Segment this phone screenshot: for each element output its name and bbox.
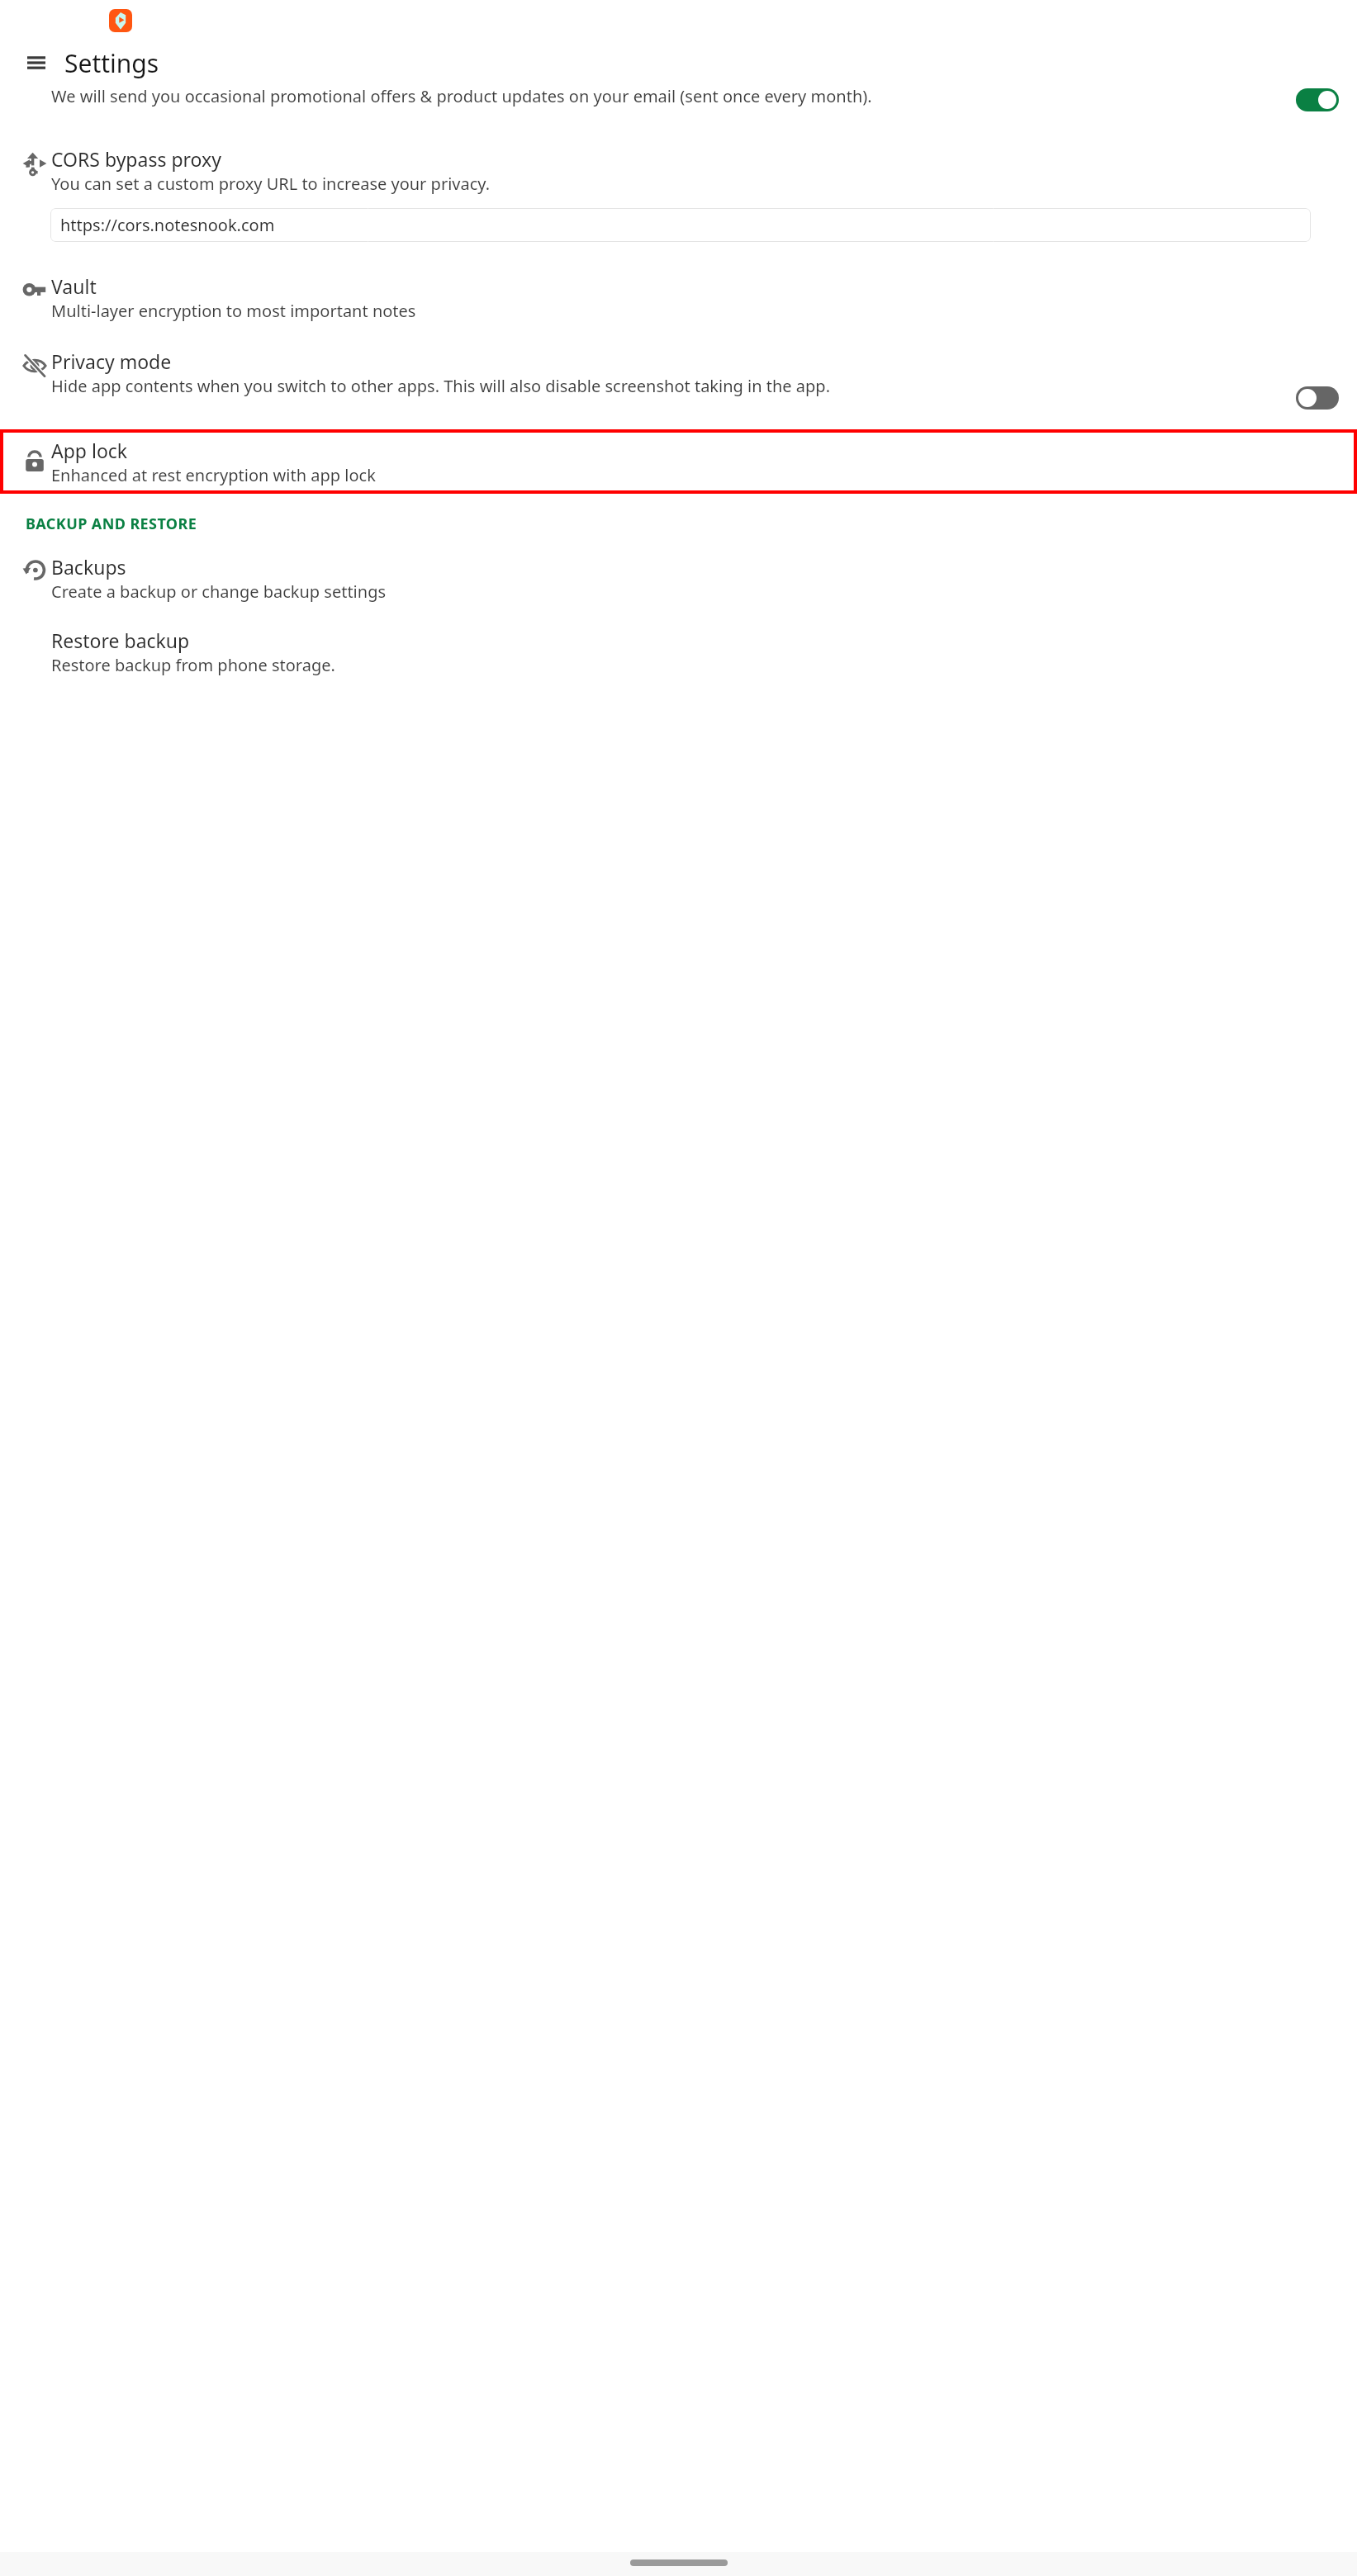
other: App logo: [109, 9, 132, 32]
staticText: You can set a custom proxy URL to increa…: [51, 173, 491, 195]
staticText: Settings: [64, 46, 159, 80]
staticText: Multi-layer encryption to most important…: [51, 300, 416, 322]
staticText: Restore backup: [51, 627, 190, 653]
button[interactable]: Toggle off: [1296, 386, 1339, 410]
button[interactable]: Privacy mode: [0, 348, 1357, 410]
staticText: Backups: [51, 554, 126, 580]
button[interactable]: https://cors.notesnook.com: [50, 208, 1311, 242]
staticText: Hide app contents when you switch to oth…: [51, 375, 831, 397]
staticText: Restore backup from phone storage.: [51, 654, 335, 676]
staticText: We will send you occasional promotional …: [51, 85, 872, 107]
button[interactable]: Toggle on: [1296, 88, 1339, 111]
staticText: BACKUP AND RESTORE: [26, 514, 197, 534]
button[interactable]: App lock: [0, 429, 1357, 494]
staticText: Create a backup or change backup setting…: [51, 580, 387, 603]
staticText: CORS bypass proxy: [51, 146, 221, 172]
button[interactable]: Open navigation menu: [18, 45, 55, 81]
staticText: Vault: [51, 273, 97, 299]
staticText: Privacy mode: [51, 348, 172, 374]
staticText: Enhanced at rest encryption with app loc…: [51, 464, 376, 486]
button[interactable]: Backups: [0, 554, 1357, 603]
staticText: https://cors.notesnook.com: [60, 214, 275, 236]
button[interactable]: Vault: [0, 273, 1357, 322]
button[interactable]: CORS bypass proxy: [0, 146, 1357, 195]
staticText: App lock: [51, 438, 128, 463]
button[interactable]: Restore backup: [0, 627, 1357, 676]
button[interactable]: We will send you occasional promotional …: [0, 84, 1357, 116]
